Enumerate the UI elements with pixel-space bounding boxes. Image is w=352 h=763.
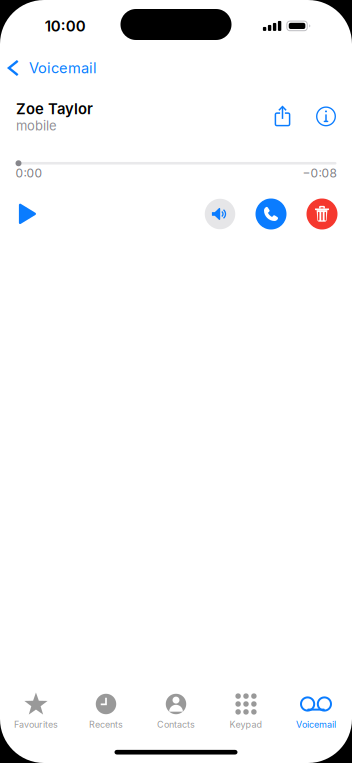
button[interactable]: Voicemail xyxy=(0,51,107,85)
staticText: 0:00 xyxy=(15,166,42,180)
button[interactable]: Keypad xyxy=(211,693,281,735)
button[interactable]: Voicemail xyxy=(281,693,351,735)
button[interactable]: Favourites xyxy=(1,693,71,735)
staticText: −0:08 xyxy=(302,166,336,180)
button[interactable]: Recents xyxy=(71,693,141,735)
button[interactable]: Voicemail info xyxy=(314,100,338,133)
staticText: Zoe Taylor xyxy=(16,100,93,118)
button[interactable]: Share xyxy=(269,100,296,133)
button[interactable]: Play xyxy=(15,198,47,230)
staticText: Voicemail xyxy=(296,719,336,730)
button[interactable]: Delete xyxy=(306,198,338,230)
button[interactable]: Call back xyxy=(255,198,287,230)
button[interactable]: Contacts xyxy=(141,693,211,735)
staticText: Recents xyxy=(89,719,123,730)
staticText: Favourites xyxy=(14,719,58,730)
staticText: 10:00 xyxy=(45,17,86,35)
staticText: Keypad xyxy=(229,719,262,730)
staticText: Contacts xyxy=(157,719,195,730)
button[interactable]: Speaker xyxy=(204,198,236,230)
staticText: mobile xyxy=(16,118,57,134)
staticText: Voicemail xyxy=(29,59,97,77)
